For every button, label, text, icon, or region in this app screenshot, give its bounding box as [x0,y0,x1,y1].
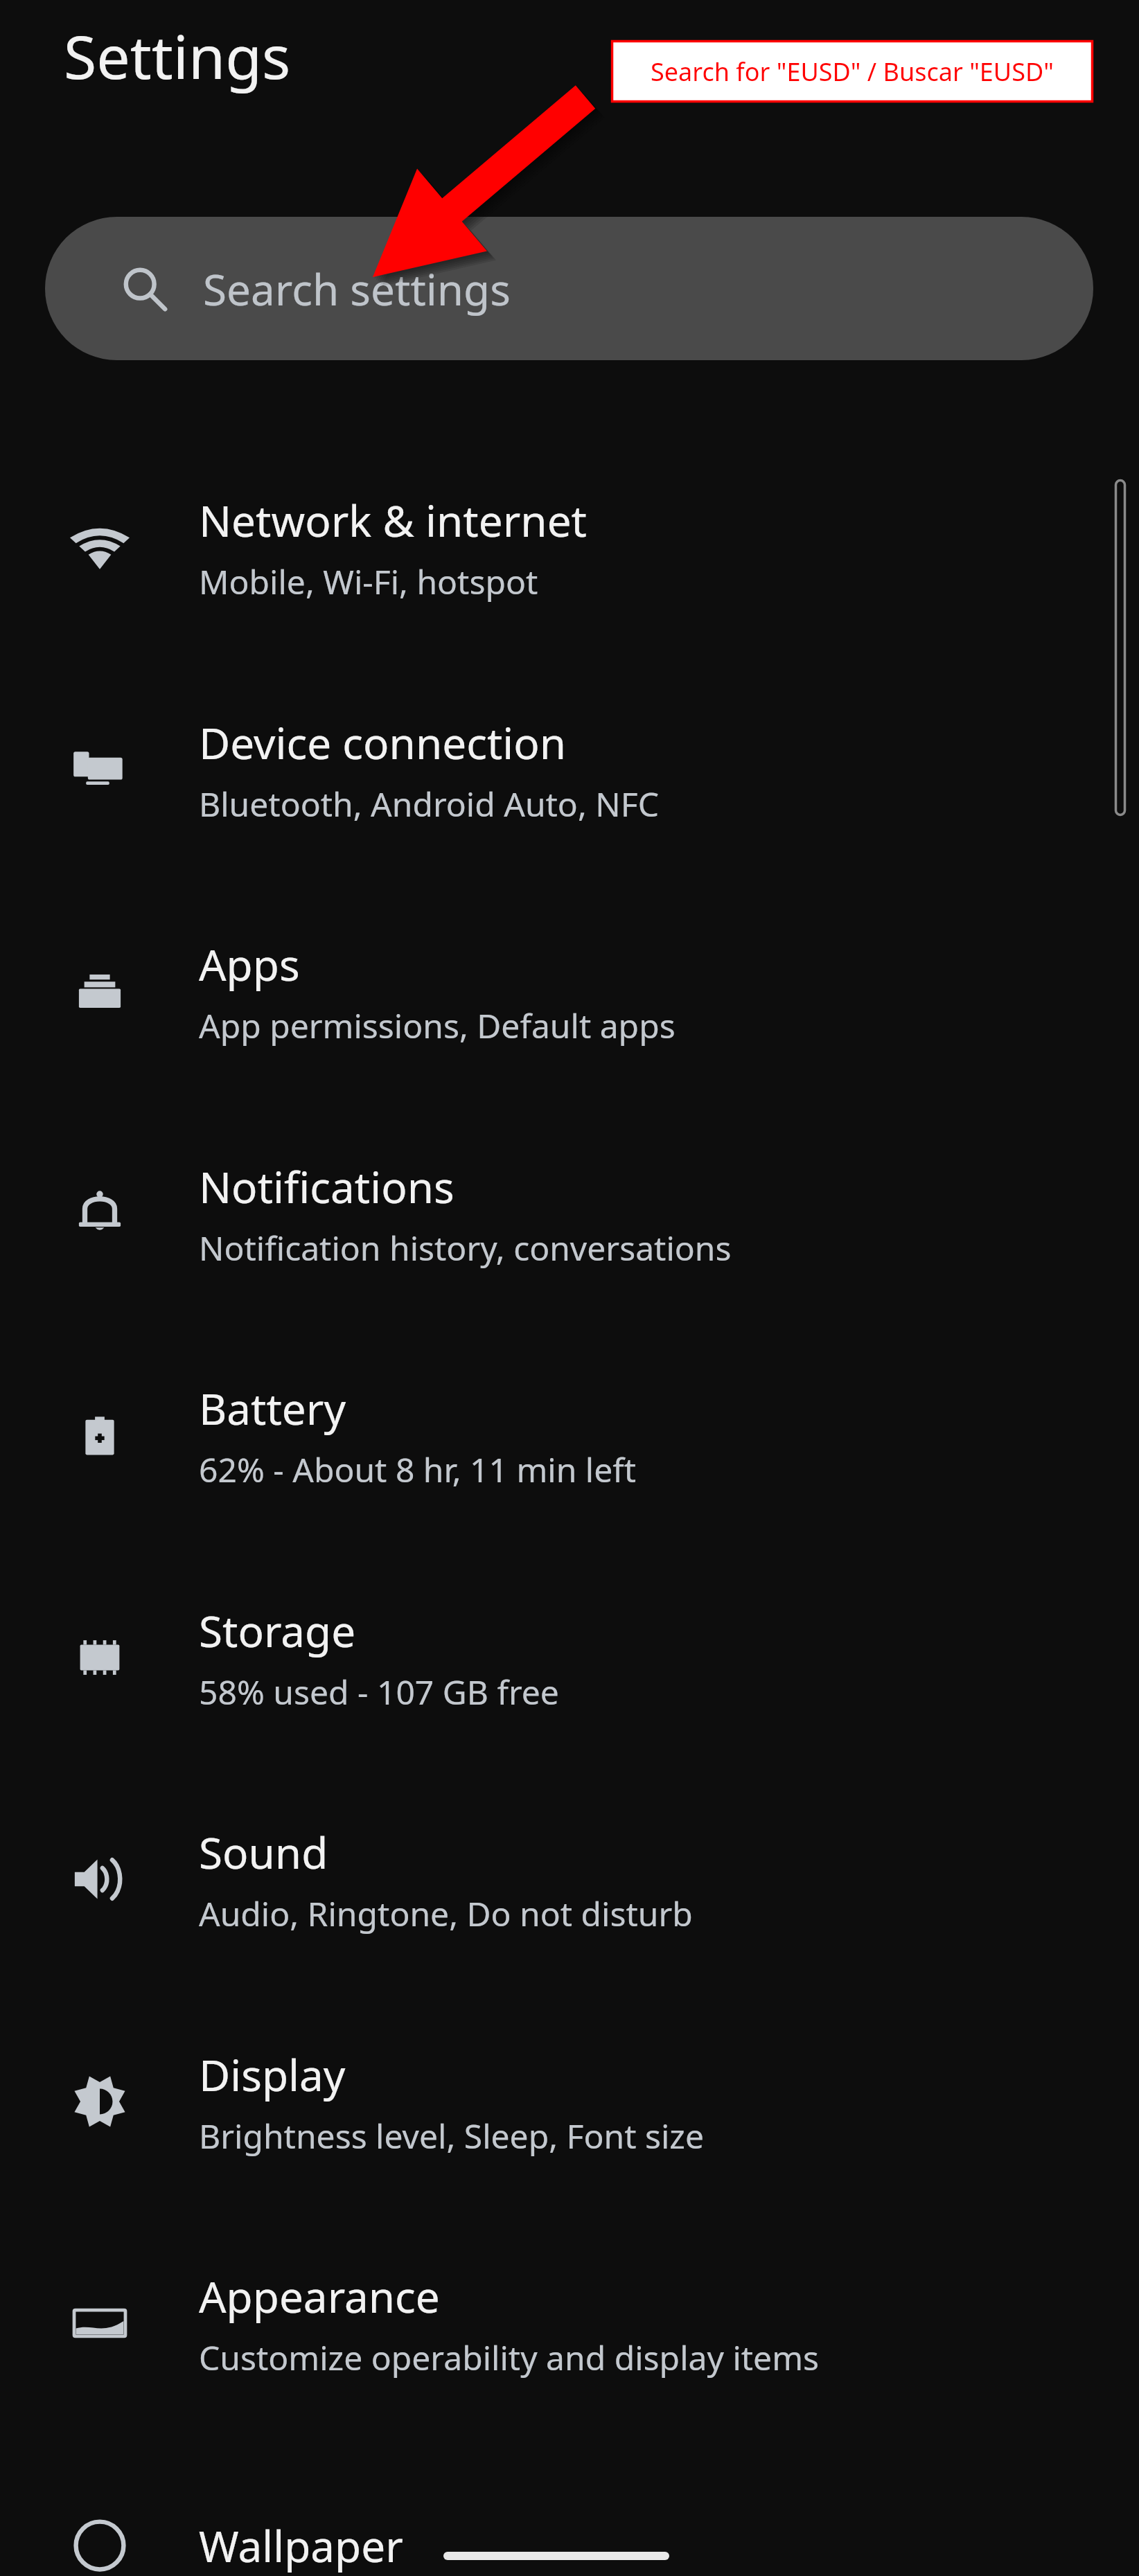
button[interactable]: Search settings [45,217,1093,360]
staticText: Display [199,2045,346,2104]
staticText: Network & internet [199,491,587,549]
staticText: Search settings [203,260,511,318]
staticText: Bluetooth, Android Auto, NFC [199,781,659,826]
button[interactable]: Network & internet [0,443,1139,651]
staticText: Storage [199,1601,356,1660]
button[interactable]: Display [0,1998,1139,2205]
staticText: Notifications [199,1157,454,1216]
staticText: Settings [64,15,291,96]
button[interactable]: Battery [0,1331,1139,1539]
staticText: Apps [199,935,300,993]
staticText: Brightness level, Sleep, Font size [199,2113,704,2158]
staticText: Customize operability and display items [199,2335,820,2380]
staticText: Appearance [199,2267,440,2325]
staticText: Wallpaper [199,2516,403,2575]
button[interactable]: Sound [0,1775,1139,1983]
staticText: App permissions, Default apps [199,1003,676,1048]
staticText: Notification history, conversations [199,1225,732,1270]
button[interactable]: Appearance [0,2219,1139,2427]
staticText: Mobile, Wi-Fi, hotspot [199,559,538,604]
staticText: Search for "EUSD" / Buscar "EUSD" [651,55,1054,89]
button[interactable]: Device connection [0,666,1139,873]
staticText: Battery [199,1379,346,1437]
staticText: 58% used - 107 GB free [199,1669,559,1714]
staticText: Sound [199,1823,328,1881]
button[interactable]: Annotation: Search for EUSD [611,40,1093,103]
button[interactable]: Wallpaper [0,2442,1139,2576]
button[interactable]: Apps [0,887,1139,1095]
staticText: Audio, Ringtone, Do not disturb [199,1891,693,1936]
button[interactable]: Storage [0,1554,1139,1761]
staticText: Device connection [199,713,567,772]
staticText: 62% - About 8 hr, 11 min left [199,1447,637,1492]
button[interactable]: Notifications [0,1110,1139,1317]
